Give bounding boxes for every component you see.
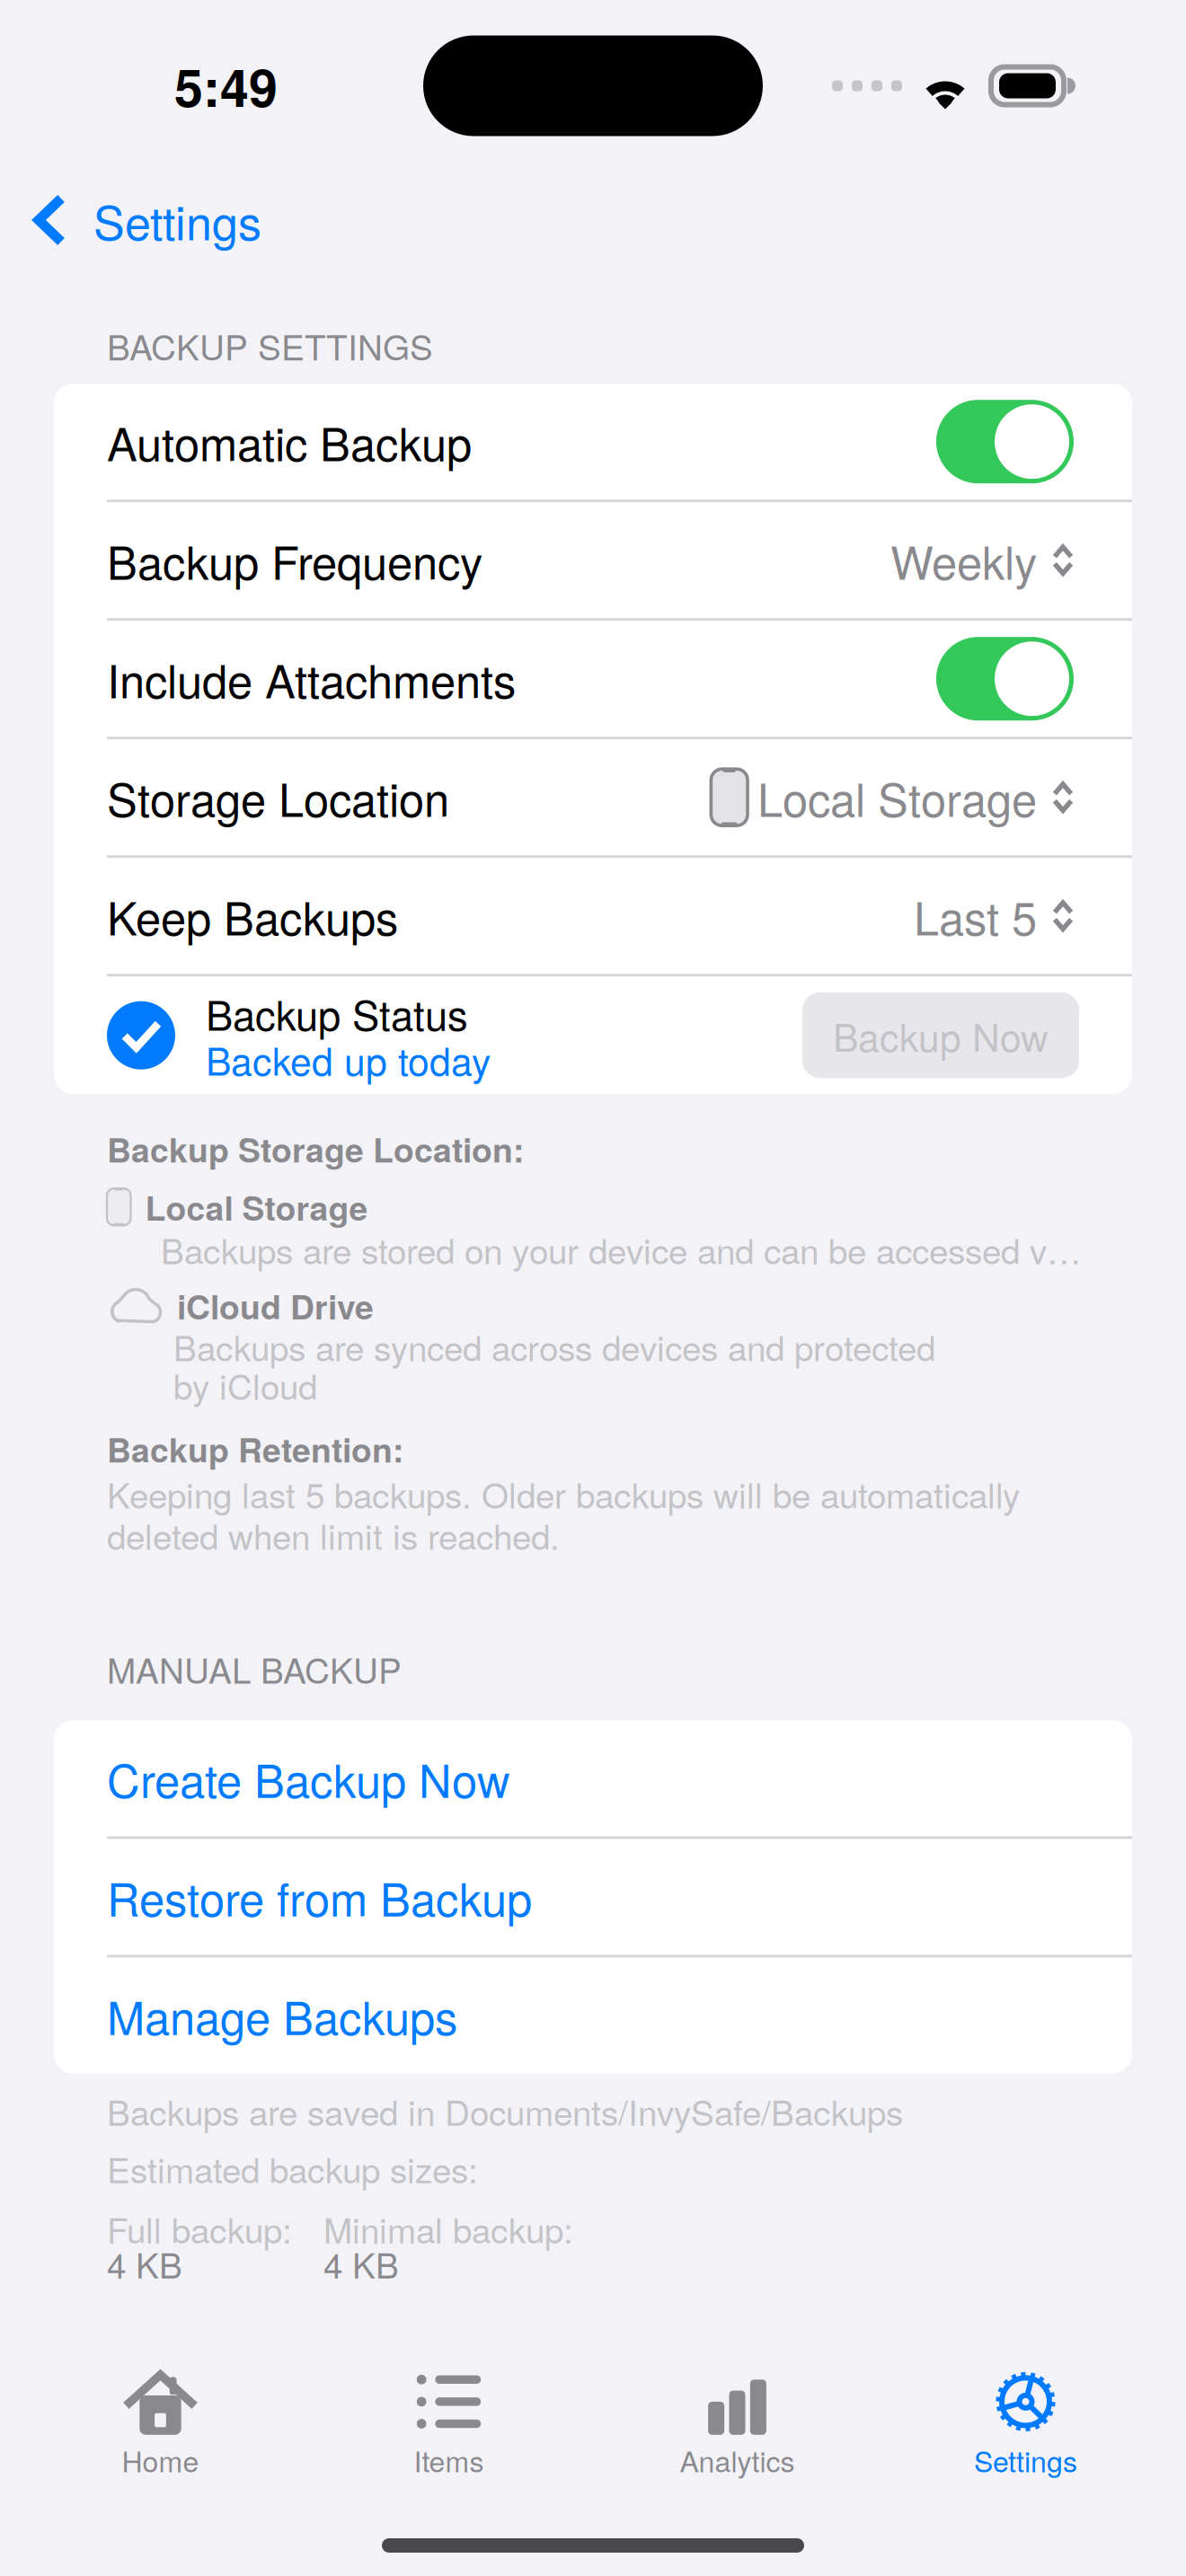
staticText: Backup Storage Location: — [107, 1130, 524, 1168]
staticText: by iCloud — [173, 1365, 317, 1404]
staticText: Backup Status — [206, 990, 468, 1036]
staticText: Settings — [93, 194, 261, 246]
staticText: Backed up today — [206, 1038, 491, 1080]
staticText: Backup Retention: — [107, 1430, 403, 1468]
button[interactable]: Analytics — [593, 2369, 881, 2476]
staticText: Create Backup Now — [107, 1753, 510, 1804]
staticText: Backup Frequency — [107, 535, 482, 586]
staticText: Analytics — [680, 2444, 795, 2476]
button[interactable]: Home — [16, 2369, 305, 2476]
button[interactable]: Settings — [0, 181, 261, 259]
button[interactable]: Restore from Backup — [54, 1839, 1132, 1955]
staticText: Include Attachments — [107, 653, 516, 704]
staticText: 4 KB — [323, 2244, 399, 2283]
staticText: Backup Now — [833, 1014, 1049, 1057]
staticText: Local Storage — [145, 1188, 368, 1226]
staticText: Full backup: — [107, 2209, 292, 2248]
button[interactable]: Items — [305, 2369, 593, 2476]
staticText: Restore from Backup — [107, 1871, 532, 1922]
staticText: 5:49 — [174, 57, 278, 115]
staticText: Manage Backups — [107, 1990, 457, 2041]
staticText: Backups are synced across devices and pr… — [173, 1327, 935, 1366]
button[interactable]: Backup Frequency — [54, 502, 1132, 618]
staticText: Keeping last 5 backups. Older backups wi… — [107, 1474, 1020, 1513]
button[interactable]: Storage Location — [54, 739, 1132, 855]
staticText: Last 5 — [914, 890, 1037, 941]
button[interactable]: Include Attachments — [54, 621, 1132, 737]
staticText: BACKUP SETTINGS — [107, 326, 433, 365]
staticText: Settings — [974, 2444, 1077, 2476]
button[interactable]: Keep Backups — [54, 858, 1132, 974]
staticText: Minimal backup: — [323, 2209, 573, 2248]
button[interactable]: Backup Now — [802, 992, 1079, 1078]
staticText: Local Storage — [757, 772, 1037, 823]
staticText: Items — [414, 2444, 484, 2476]
button[interactable]: Create Backup Now — [54, 1720, 1132, 1836]
staticText: Backups are stored on your device and ca… — [161, 1230, 1082, 1269]
button[interactable]: Settings — [881, 2369, 1170, 2476]
staticText: Keep Backups — [107, 890, 398, 941]
staticText: iCloud Drive — [177, 1287, 374, 1324]
staticText: Backups are saved in Documents/InvySafe/… — [107, 2091, 903, 2130]
staticText: Home — [122, 2444, 199, 2476]
staticText: Weekly — [890, 535, 1037, 586]
button[interactable]: Automatic Backup — [54, 384, 1132, 500]
staticText: deleted when limit is reached. — [107, 1515, 560, 1554]
staticText: MANUAL BACKUP — [107, 1649, 402, 1688]
button[interactable]: Manage Backups — [54, 1958, 1132, 2073]
staticText: 4 KB — [107, 2244, 182, 2283]
staticText: Storage Location — [107, 772, 449, 823]
staticText: Automatic Backup — [107, 416, 472, 467]
staticText: Estimated backup sizes: — [107, 2149, 478, 2188]
